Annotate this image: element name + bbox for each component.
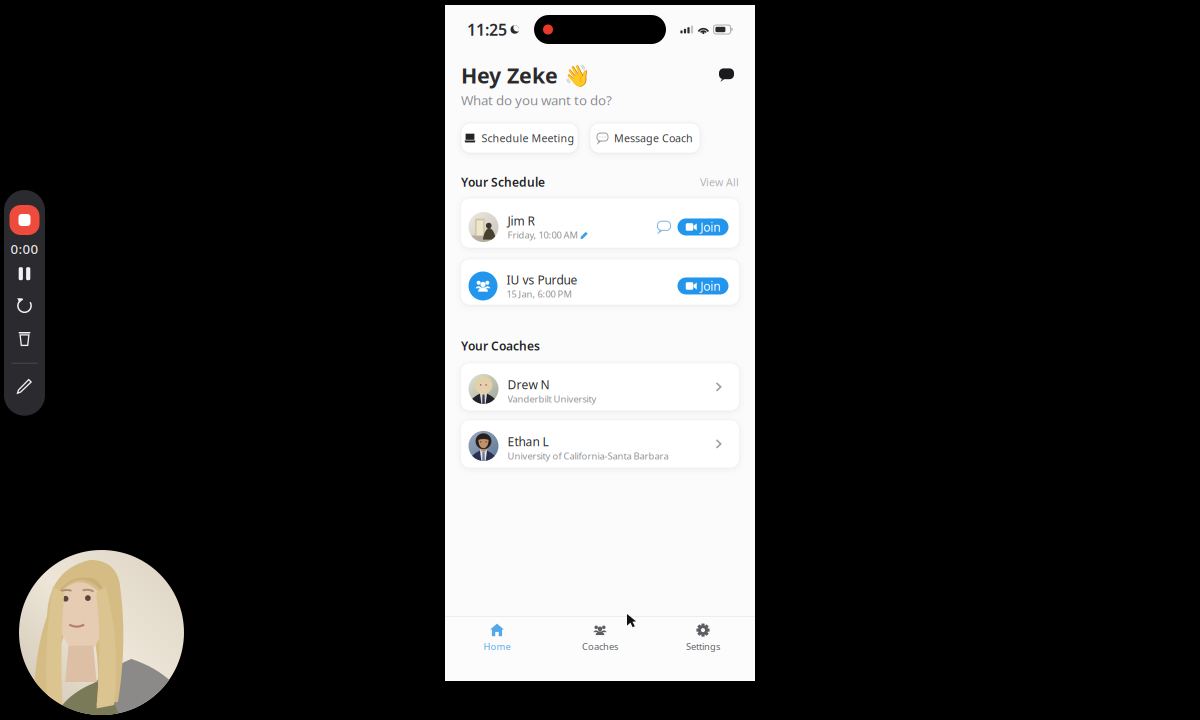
button[interactable]: Pause bbox=[6, 258, 42, 290]
button[interactable]: Delete bbox=[6, 322, 42, 356]
staticText: IU vs Purdue bbox=[506, 272, 577, 288]
button[interactable]: Message Coach bbox=[590, 123, 700, 153]
staticText: Join bbox=[700, 219, 720, 235]
staticText: 11:25 bbox=[467, 19, 507, 40]
staticText: Ethan L bbox=[507, 434, 548, 450]
button[interactable]: Home bbox=[445, 618, 548, 658]
button[interactable]: Restart bbox=[6, 290, 42, 322]
staticText: Vanderbilt University bbox=[507, 393, 596, 405]
staticText: University of California-Santa Barbara bbox=[507, 450, 668, 462]
staticText: View All bbox=[700, 175, 739, 189]
button[interactable]: IU vs Purdue bbox=[460, 259, 739, 305]
button[interactable]: Stop recording bbox=[5, 203, 43, 237]
staticText: 0:00 bbox=[10, 240, 38, 258]
staticText: Coaches bbox=[582, 640, 618, 652]
staticText: Hey Zeke 👋 bbox=[461, 61, 591, 89]
button[interactable]: Messages bbox=[714, 63, 739, 87]
staticText: Join bbox=[700, 278, 720, 294]
button[interactable]: View All bbox=[700, 175, 739, 189]
button[interactable]: Ethan L bbox=[460, 420, 739, 468]
button[interactable]: Settings bbox=[651, 618, 754, 658]
staticText: Friday, 10:00 AM bbox=[507, 229, 577, 241]
button[interactable]: Coaches bbox=[548, 618, 651, 658]
staticText: Drew N bbox=[507, 377, 549, 393]
staticText: Message Coach bbox=[614, 131, 693, 145]
staticText: What do you want to do? bbox=[461, 91, 612, 109]
staticText: Your Schedule bbox=[461, 174, 545, 190]
staticText: Jim R bbox=[507, 213, 534, 229]
staticText: Home bbox=[483, 640, 510, 652]
button[interactable]: Schedule Meeting bbox=[461, 123, 578, 153]
staticText: Settings bbox=[686, 640, 720, 652]
staticText: 15 Jan, 6:00 PM bbox=[506, 288, 571, 300]
button[interactable]: Drew N bbox=[460, 363, 739, 411]
button[interactable]: Annotate bbox=[6, 371, 42, 403]
button[interactable]: Jim R bbox=[460, 198, 739, 248]
staticText: Schedule Meeting bbox=[481, 131, 574, 145]
staticText: Your Coaches bbox=[461, 338, 540, 354]
